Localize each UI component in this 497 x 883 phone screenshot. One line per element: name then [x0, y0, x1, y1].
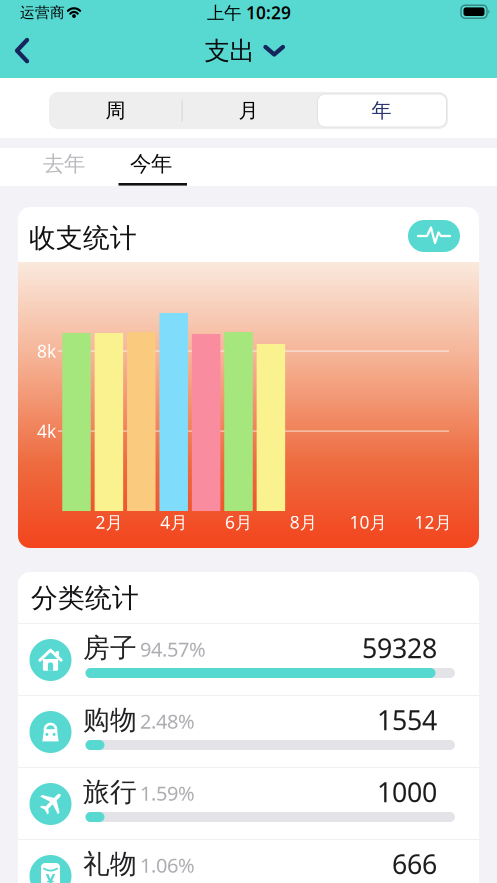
staticText: 8月: [290, 510, 317, 533]
button[interactable]: ¥: [18, 840, 479, 883]
staticText: 59328: [362, 630, 437, 666]
button[interactable]: [408, 220, 460, 252]
staticText: 12月: [414, 510, 451, 533]
staticText: 4k: [37, 419, 56, 442]
staticText: 1.06%: [140, 852, 195, 878]
button[interactable]: 周: [55, 93, 175, 127]
staticText: 去年: [43, 151, 85, 177]
staticText: 分类统计: [31, 582, 139, 614]
staticText: 上午 10:29: [207, 1, 291, 24]
staticText: 收支统计: [29, 222, 137, 254]
staticText: 周: [105, 98, 125, 123]
staticText: 购物: [83, 704, 137, 736]
staticText: 10月: [350, 510, 387, 533]
button[interactable]: 购物: [18, 696, 479, 768]
button[interactable]: 去年: [24, 145, 104, 183]
staticText: 2.48%: [140, 708, 195, 734]
staticText: 1.59%: [140, 780, 195, 806]
staticText: 94.57%: [140, 636, 206, 662]
staticText: 6月: [225, 510, 252, 533]
staticText: 2月: [95, 510, 122, 533]
staticText: ¥: [45, 868, 55, 883]
staticText: 1554: [377, 702, 437, 738]
staticText: 年: [371, 98, 391, 123]
button[interactable]: 旅行: [18, 768, 479, 840]
staticText: 月: [238, 98, 258, 123]
staticText: 房子: [83, 632, 137, 664]
button[interactable]: 支出: [204, 35, 284, 66]
button[interactable]: 月: [188, 93, 308, 127]
staticText: 运营商: [20, 3, 65, 21]
staticText: 666: [392, 846, 437, 882]
staticText: 8k: [37, 339, 56, 362]
staticText: 4月: [160, 510, 187, 533]
staticText: 礼物: [83, 848, 137, 880]
button[interactable]: 房子: [18, 624, 479, 696]
staticText: 今年: [130, 151, 172, 177]
button[interactable]: 年: [321, 93, 441, 127]
staticText: 1000: [377, 774, 437, 810]
staticText: 旅行: [83, 776, 137, 808]
button[interactable]: 今年: [111, 145, 191, 183]
staticText: 支出: [204, 35, 254, 66]
button[interactable]: [11, 38, 33, 64]
